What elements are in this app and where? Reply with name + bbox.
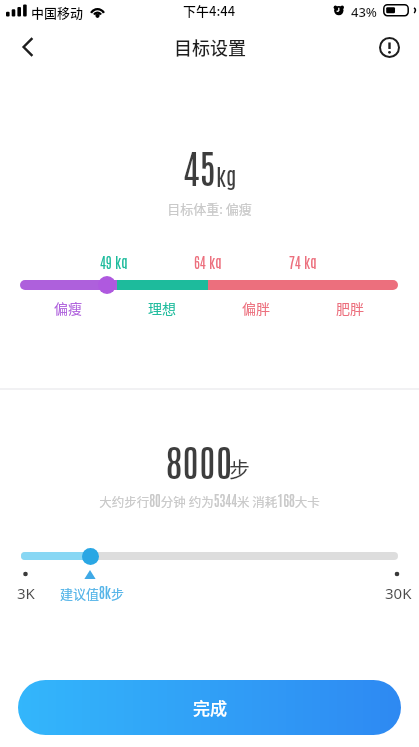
staticText: 目标体重: 偏瘦 xyxy=(0,199,419,218)
staticText: 理想 xyxy=(148,298,176,316)
staticText: 偏胖 xyxy=(242,298,270,316)
staticText: kg xyxy=(216,160,237,190)
staticText: 步 xyxy=(229,453,250,483)
staticText: 8000 xyxy=(166,437,233,484)
staticText: 43% xyxy=(351,3,377,21)
staticText: 3K xyxy=(17,583,35,601)
staticText: 肥胖 xyxy=(336,298,364,316)
staticText: 45 xyxy=(183,141,216,191)
staticText: 大约步行80分钟 约为5344米 消耗168大卡 xyxy=(0,491,419,511)
button[interactable]: Target weight slider xyxy=(98,276,116,294)
staticText: 建议值8k步 xyxy=(60,583,124,601)
staticText: 完成 xyxy=(193,695,227,720)
button[interactable]: Step goal slider xyxy=(82,548,99,565)
staticText: 中国移动 xyxy=(31,3,84,22)
button[interactable]: Info xyxy=(371,29,407,65)
button[interactable]: Back xyxy=(8,27,48,67)
staticText: 偏瘦 xyxy=(54,298,82,316)
staticText: 74 kg xyxy=(289,253,317,269)
staticText: 目标设置 xyxy=(174,34,246,60)
staticText: 64 kg xyxy=(194,253,222,269)
staticText: 49 kg xyxy=(100,253,128,269)
staticText: 30K xyxy=(385,583,412,601)
button[interactable]: 完成 xyxy=(18,680,401,735)
staticText: 下午4:44 xyxy=(183,1,236,20)
